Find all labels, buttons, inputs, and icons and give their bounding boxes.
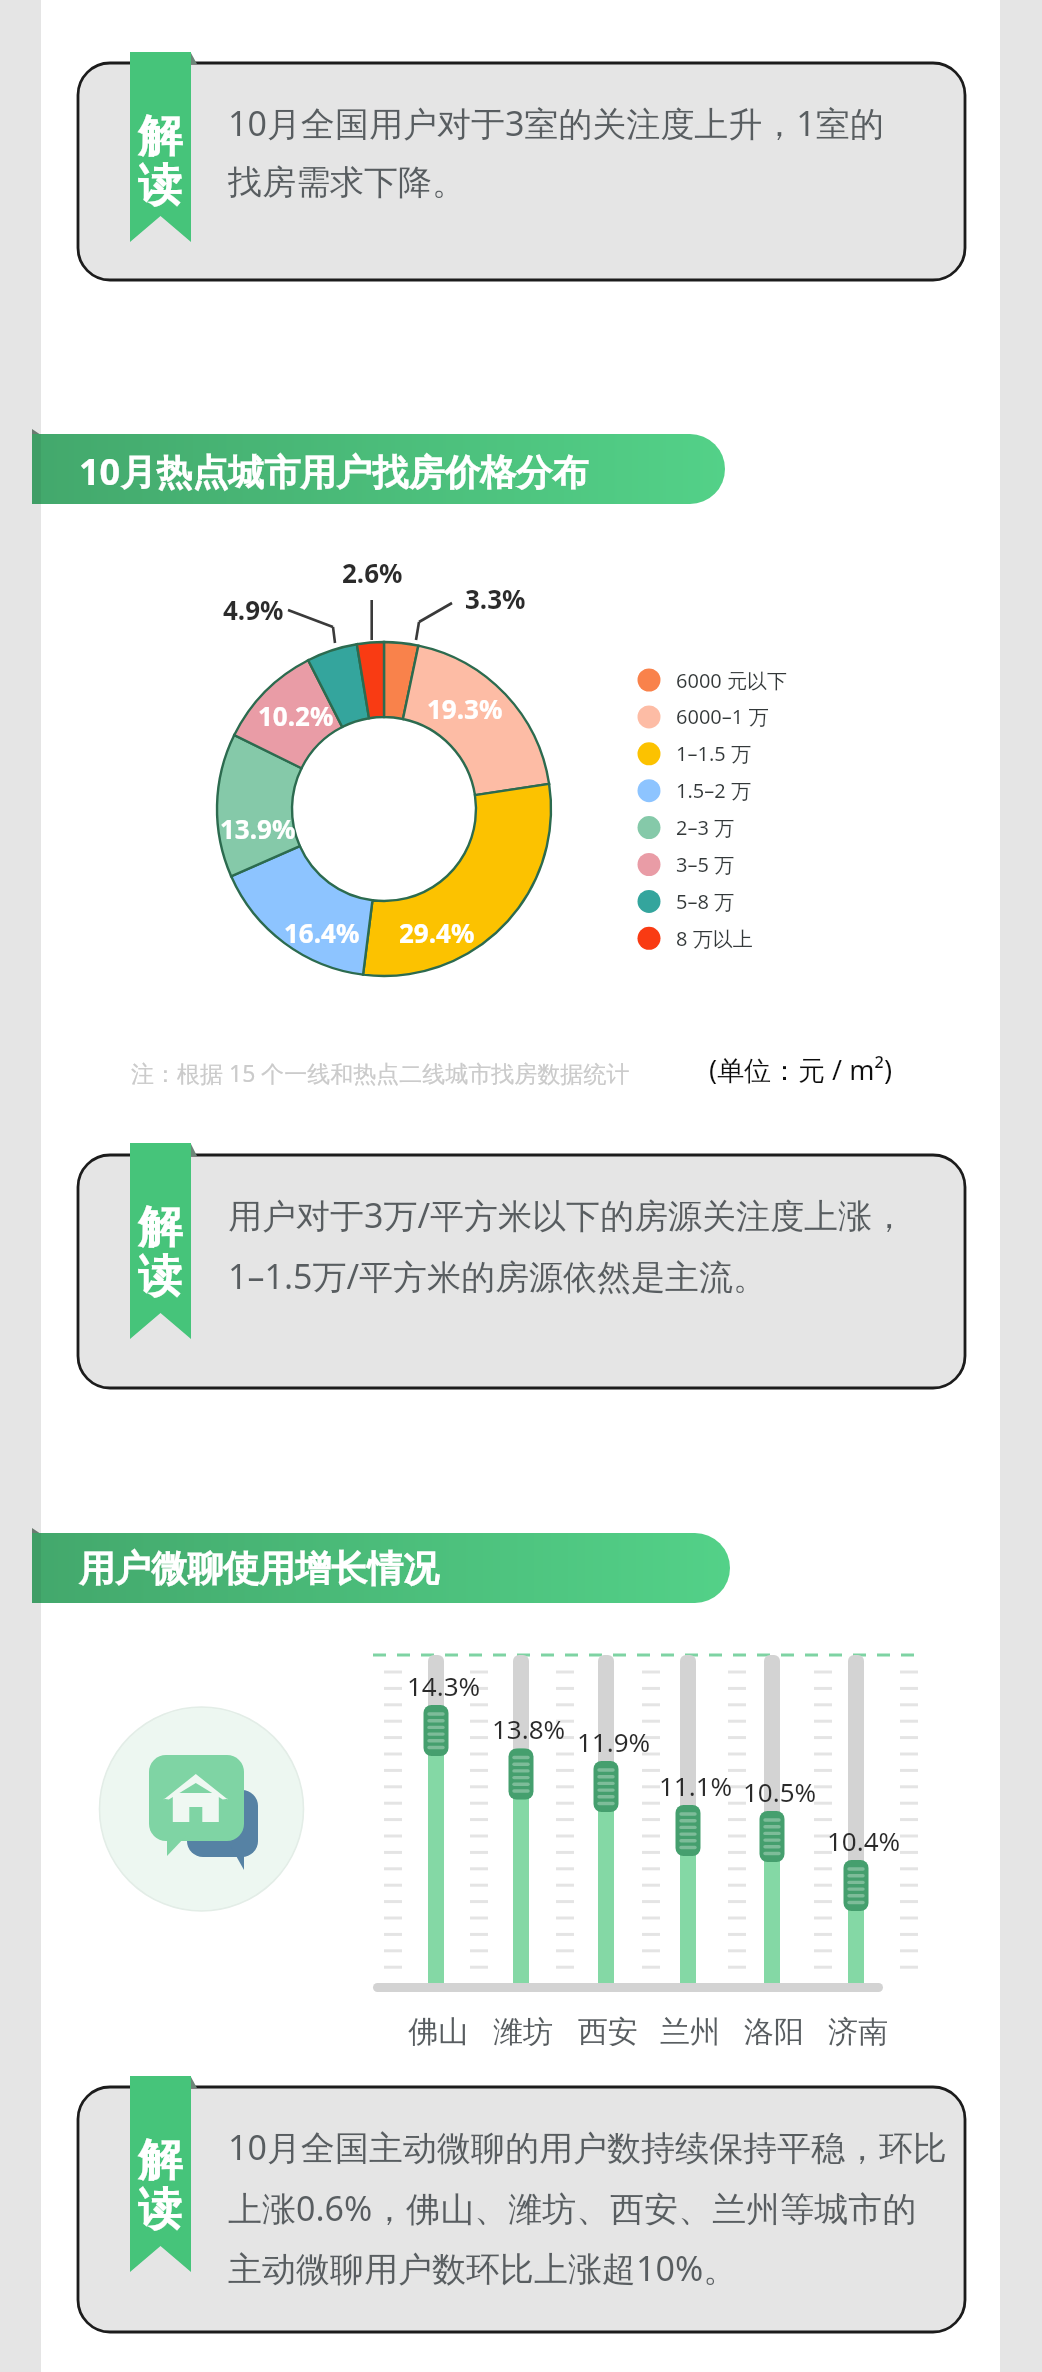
staticText: 济南: [828, 2013, 888, 2051]
button[interactable]: 济南: [828, 2013, 888, 2051]
staticText: 3.3%: [465, 581, 526, 616]
staticText: 29.4%: [399, 915, 475, 950]
button[interactable]: 8 万以上: [633, 920, 833, 953]
staticText: 2–3 万: [676, 814, 735, 841]
staticText: 19.3%: [427, 691, 503, 726]
button[interactable]: 5–8 万: [633, 883, 833, 916]
staticText: 2.6%: [342, 555, 403, 590]
button[interactable]: 1–1.5 万: [633, 735, 833, 768]
button[interactable]: 10月全国用户对于3室的关注度上升，1室的 找房需求下降。: [228, 100, 973, 204]
staticText: (单位：元 / m²): [709, 1051, 892, 1088]
staticText: 16.4%: [284, 915, 360, 950]
staticText: 10月热点城市用户找房价格分布: [79, 447, 589, 496]
staticText: 用户微聊使用增长情况: [79, 1546, 439, 1591]
staticText: 10.4%: [827, 1823, 901, 1858]
button[interactable]: 洛阳: [744, 2013, 804, 2051]
staticText: 13.9%: [220, 811, 296, 846]
button[interactable]: 用户对于3万/平方米以下的房源关注度上涨， 1–1.5万/平方米的房源依然是主流…: [228, 1192, 973, 1299]
staticText: 潍坊: [493, 2013, 553, 2051]
staticText: 13.8%: [492, 1711, 566, 1746]
button[interactable]: 潍坊: [493, 2013, 553, 2051]
button[interactable]: 10月全国主动微聊的用户数持续保持平稳，环比 上涨0.6%，佛山、潍坊、西安、兰…: [228, 2124, 988, 2291]
button[interactable]: 1.5–2 万: [633, 772, 833, 805]
staticText: 解 读: [138, 1200, 182, 1304]
staticText: 11.1%: [659, 1768, 733, 1803]
staticText: 6000 元以下: [676, 667, 787, 694]
staticText: 兰州: [660, 2013, 720, 2051]
staticText: 3–5 万: [676, 851, 735, 878]
button[interactable]: 6000 元以下: [633, 662, 833, 695]
staticText: 8 万以上: [676, 925, 753, 952]
staticText: 佛山: [408, 2013, 468, 2051]
staticText: 解 读: [138, 109, 182, 213]
staticText: 6000–1 万: [676, 703, 769, 730]
staticText: 洛阳: [744, 2013, 804, 2051]
button[interactable]: 2–3 万: [633, 809, 833, 842]
button[interactable]: 佛山: [408, 2013, 468, 2051]
staticText: 解 读: [138, 2133, 182, 2237]
staticText: 注：根据 15 个一线和热点二线城市找房数据统计: [131, 1057, 630, 1088]
staticText: 11.9%: [577, 1724, 651, 1759]
button[interactable]: 西安: [578, 2013, 638, 2051]
staticText: 10.2%: [258, 698, 334, 733]
button[interactable]: 3–5 万: [633, 846, 833, 879]
staticText: 10月全国主动微聊的用户数持续保持平稳，环比 上涨0.6%，佛山、潍坊、西安、兰…: [228, 2124, 947, 2291]
staticText: 14.3%: [407, 1668, 481, 1703]
button[interactable]: Chat app icon: [99, 1707, 304, 1912]
staticText: 10.5%: [743, 1774, 817, 1809]
button[interactable]: 用户微聊使用增长情况: [79, 1546, 439, 1591]
staticText: 用户对于3万/平方米以下的房源关注度上涨， 1–1.5万/平方米的房源依然是主流…: [228, 1192, 907, 1299]
button[interactable]: 兰州: [660, 2013, 720, 2051]
staticText: 1–1.5 万: [676, 740, 751, 767]
staticText: 西安: [578, 2013, 638, 2051]
staticText: 1.5–2 万: [676, 777, 751, 804]
button[interactable]: 6000–1 万: [633, 698, 833, 731]
staticText: 4.9%: [223, 592, 284, 627]
button[interactable]: 10月热点城市用户找房价格分布: [79, 447, 589, 496]
staticText: 10月全国用户对于3室的关注度上升，1室的 找房需求下降。: [228, 100, 884, 204]
staticText: 5–8 万: [676, 888, 735, 915]
